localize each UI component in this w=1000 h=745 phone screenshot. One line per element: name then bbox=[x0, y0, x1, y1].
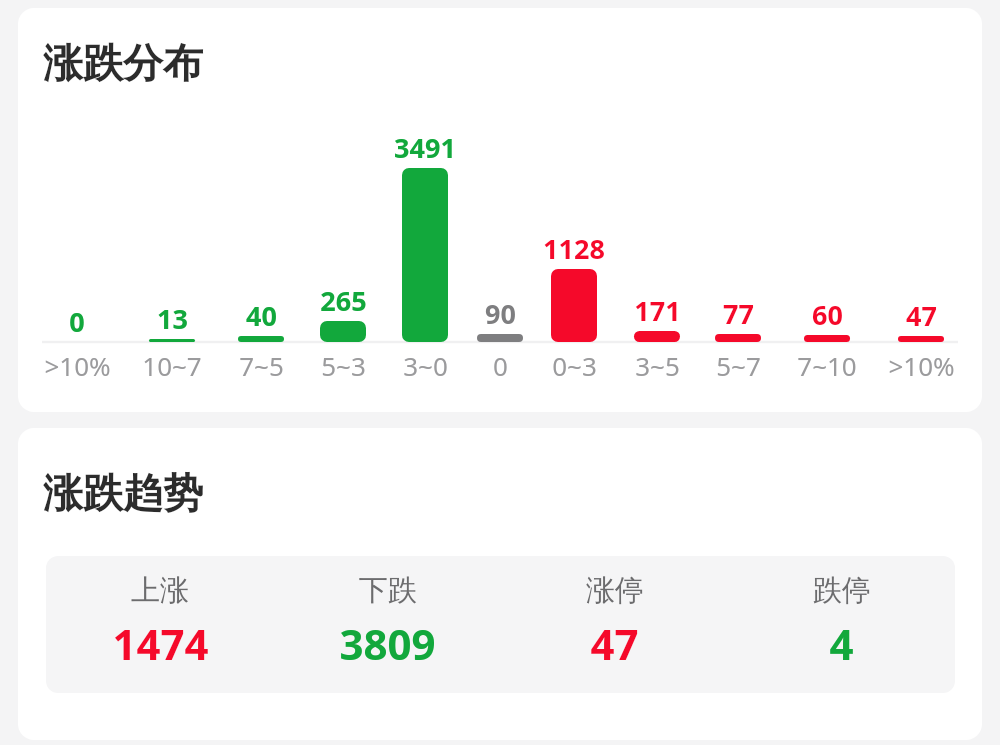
button[interactable]: 下跌 bbox=[274, 556, 501, 693]
staticText: 47 bbox=[906, 297, 937, 334]
staticText: 上涨 bbox=[131, 572, 189, 609]
staticText: 90 bbox=[485, 295, 516, 332]
staticText: 5~7 bbox=[716, 348, 761, 383]
staticText: 涨跌分布 bbox=[43, 38, 203, 88]
staticText: 40 bbox=[246, 297, 277, 334]
staticText: 4 bbox=[829, 615, 854, 672]
button[interactable]: 涨跌分布 bbox=[18, 8, 982, 412]
staticText: 171 bbox=[634, 292, 681, 329]
staticText: 7~10 bbox=[797, 348, 857, 383]
staticText: >10% bbox=[888, 348, 955, 383]
staticText: 13 bbox=[157, 300, 188, 337]
staticText: 0 bbox=[69, 303, 85, 340]
staticText: 涨跌趋势 bbox=[43, 468, 203, 518]
staticText: 3491 bbox=[394, 129, 456, 166]
button[interactable]: 上涨 bbox=[46, 556, 274, 693]
staticText: 10~7 bbox=[142, 348, 202, 383]
staticText: 3809 bbox=[339, 615, 436, 672]
staticText: >10% bbox=[44, 348, 111, 383]
staticText: 5~3 bbox=[321, 348, 366, 383]
staticText: 265 bbox=[320, 282, 367, 319]
button[interactable]: 涨停 bbox=[501, 556, 728, 693]
staticText: 1128 bbox=[543, 230, 605, 267]
staticText: 3~0 bbox=[403, 348, 448, 383]
staticText: 跌停 bbox=[813, 572, 871, 609]
staticText: 7~5 bbox=[239, 348, 284, 383]
staticText: 0~3 bbox=[552, 348, 597, 383]
staticText: 60 bbox=[812, 296, 843, 333]
staticText: 1474 bbox=[112, 615, 209, 672]
staticText: 47 bbox=[590, 615, 639, 672]
staticText: 0 bbox=[493, 348, 508, 383]
button[interactable]: 跌停 bbox=[728, 556, 955, 693]
staticText: 涨停 bbox=[586, 572, 644, 609]
staticText: 3~5 bbox=[635, 348, 680, 383]
button[interactable]: 涨跌趋势 bbox=[18, 428, 982, 740]
staticText: 77 bbox=[723, 295, 754, 332]
staticText: 下跌 bbox=[359, 572, 417, 609]
